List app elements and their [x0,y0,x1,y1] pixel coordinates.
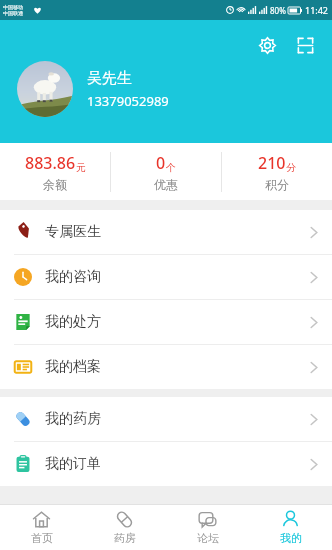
staticText: 0 [156,152,166,174]
staticText: 论坛 [197,531,219,545]
button[interactable]: 883.86 [0,143,110,200]
button[interactable]: 0 [111,143,221,200]
staticText: 11:42 [305,4,329,16]
staticText: 优惠 [154,177,178,192]
staticText: 13379052989 [87,92,169,110]
button[interactable]: 我的档案 [0,345,332,389]
button[interactable]: Scan QR code [290,30,320,60]
button[interactable] [17,61,73,117]
staticText: 个 [166,161,176,174]
button[interactable]: 论坛 [166,505,249,550]
staticText: 余额 [43,177,67,192]
staticText: 首页 [31,531,53,545]
staticText: 中国联通 [3,10,23,16]
staticText: 我的咨询 [45,268,101,286]
staticText: 中国移动 [3,4,23,10]
button[interactable]: 我的处方 [0,300,332,344]
button[interactable]: 我的 [249,505,332,550]
staticText: 分 [286,161,296,174]
button[interactable]: 药房 [83,505,166,550]
staticText: 吴先生 [87,69,132,88]
staticText: 883.86 [25,152,76,174]
staticText: 药房 [114,531,136,545]
button[interactable]: 专属医生 [0,210,332,254]
button[interactable]: Settings [252,30,282,60]
staticText: 我的 [280,531,302,545]
staticText: 我的档案 [45,358,101,376]
staticText: 我的订单 [45,455,101,473]
staticText: 专属医生 [45,223,101,241]
button[interactable]: 我的咨询 [0,255,332,299]
button[interactable]: 210 [222,143,332,200]
staticText: 元 [76,161,86,174]
button[interactable]: 我的订单 [0,442,332,486]
staticText: 我的处方 [45,313,101,331]
staticText: 积分 [265,177,289,192]
staticText: 我的药房 [45,410,101,428]
button[interactable]: 我的药房 [0,397,332,441]
button[interactable]: 首页 [0,505,83,550]
staticText: 80% [270,5,286,16]
staticText: 210 [258,152,286,174]
